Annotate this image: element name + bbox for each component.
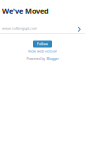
staticText: Follow bbox=[37, 42, 48, 46]
staticText: Blogger bbox=[47, 56, 59, 61]
button[interactable]: View web version bbox=[28, 49, 57, 54]
button[interactable]: Follow bbox=[33, 40, 52, 47]
staticText: View web version bbox=[28, 49, 57, 54]
staticText: We've Moved bbox=[2, 6, 49, 16]
button[interactable]: Blogger bbox=[47, 56, 59, 61]
staticText: www.softengupt.com bbox=[2, 26, 37, 31]
staticText: Powered by bbox=[26, 56, 45, 61]
button[interactable]: We've Moved bbox=[0, 0, 85, 34]
